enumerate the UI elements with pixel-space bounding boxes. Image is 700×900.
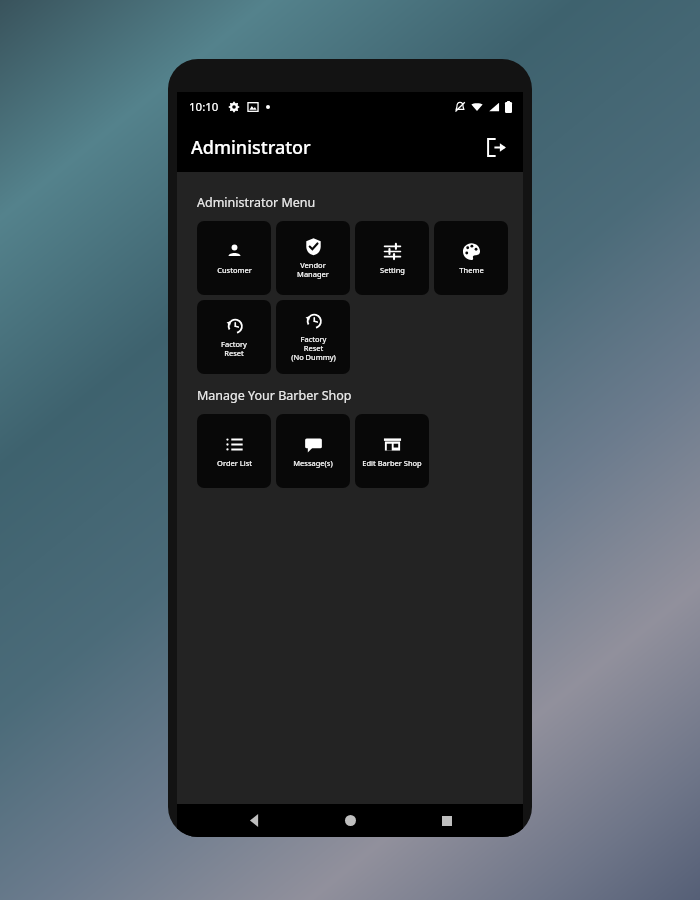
staticText: Factory Reset (No Dummy): [291, 334, 336, 363]
staticText: Administrator Menu: [197, 194, 316, 211]
staticText: Edit Barber Shop: [362, 458, 422, 468]
button[interactable]: Vendor Manager: [276, 221, 350, 295]
staticText: Administrator: [191, 135, 311, 160]
button[interactable]: Factory Reset (No Dummy): [276, 300, 350, 374]
button[interactable]: Theme: [434, 221, 508, 295]
button[interactable]: Order List: [197, 414, 271, 488]
staticText: Vendor Manager: [297, 260, 329, 280]
button[interactable]: Edit Barber Shop: [355, 414, 429, 488]
button[interactable]: Customer: [197, 221, 271, 295]
staticText: Setting: [380, 265, 405, 275]
staticText: 10:10: [189, 99, 219, 115]
staticText: Message(s): [293, 458, 333, 468]
button[interactable]: Logout: [477, 128, 515, 166]
button[interactable]: Factory Reset: [197, 300, 271, 374]
staticText: Customer: [217, 265, 252, 275]
staticText: Theme: [459, 265, 484, 275]
button[interactable]: Home: [330, 804, 370, 837]
button[interactable]: Message(s): [276, 414, 350, 488]
staticText: Factory Reset: [221, 339, 247, 359]
button[interactable]: Back: [234, 804, 274, 837]
button[interactable]: Setting: [355, 221, 429, 295]
button[interactable]: Recents: [427, 804, 467, 837]
staticText: Manage Your Barber Shop: [197, 387, 352, 404]
staticText: Order List: [217, 458, 252, 468]
